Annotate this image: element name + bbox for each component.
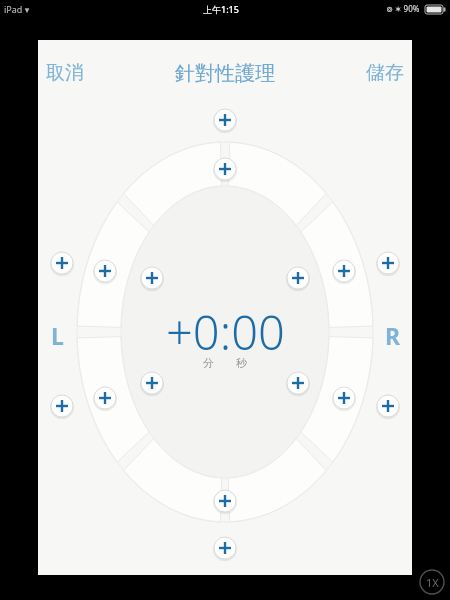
staticText: 儲存 <box>366 61 404 85</box>
button[interactable]: Add time <box>376 394 400 418</box>
button[interactable]: Add time <box>213 489 237 513</box>
button[interactable]: Zoom 1X <box>419 569 445 595</box>
staticText: R <box>385 320 401 346</box>
button[interactable]: Add time <box>93 386 117 410</box>
staticText: L <box>51 320 64 346</box>
staticText: 取消 <box>46 61 84 85</box>
staticText: iPad ▾ <box>4 3 30 15</box>
button[interactable]: Add time <box>376 251 400 275</box>
button[interactable]: Add time <box>140 266 164 290</box>
button[interactable]: Add time <box>332 259 356 283</box>
button[interactable]: Add time <box>286 266 310 290</box>
staticText: ⊚ ✶ 90% <box>386 3 420 14</box>
button[interactable]: Add time <box>50 251 74 275</box>
button[interactable]: Add time <box>213 108 237 132</box>
staticText: 分 秒 <box>203 355 247 370</box>
button[interactable]: Add time <box>332 386 356 410</box>
staticText: +0:00 <box>166 300 285 354</box>
staticText: 針對性護理 <box>175 61 275 86</box>
button[interactable]: Add time <box>213 157 237 181</box>
button[interactable]: Add time <box>93 259 117 283</box>
button[interactable]: Add time <box>50 394 74 418</box>
button[interactable]: Add time <box>286 371 310 395</box>
button[interactable]: 儲存 <box>332 55 404 91</box>
button[interactable]: Add time <box>140 371 164 395</box>
button[interactable]: Add time <box>213 536 237 560</box>
button[interactable]: 取消 <box>46 55 118 91</box>
staticText: 上午1:15 <box>203 3 239 15</box>
staticText: 1X <box>426 575 439 590</box>
